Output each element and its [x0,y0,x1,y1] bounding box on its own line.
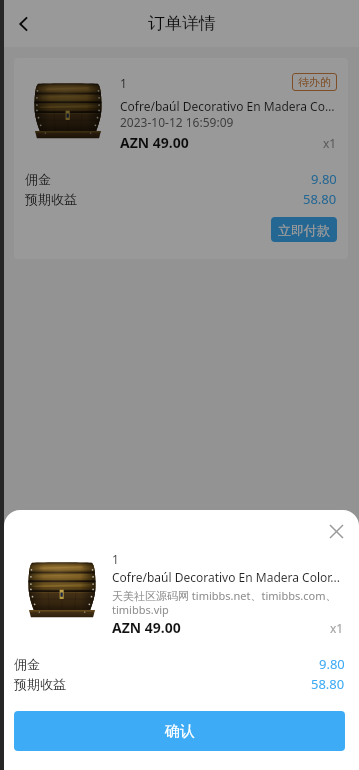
staticText: x1 [323,135,337,151]
staticText: 天美社区源码网 timibbs.net、timibbs.com、timibbs.… [112,588,344,617]
staticText: 预期收益 [25,191,77,207]
staticText: 58.80 [311,675,345,693]
button[interactable]: Close [321,516,351,546]
staticText: 1 [120,75,127,91]
staticText: Cofre/baúl Decorativo En Madera Color... [112,569,340,585]
staticText: 58.80 [303,190,337,208]
staticText: 佣金 [25,171,51,187]
staticText: 预期收益 [14,676,66,692]
staticText: 9.80 [311,170,337,188]
staticText: 佣金 [14,656,40,672]
staticText: AZN 49.00 [120,133,189,152]
staticText: 2023-10-12 16:59:09 [120,114,234,130]
staticText: 1 [112,551,119,567]
staticText: AZN 49.00 [112,618,181,637]
button[interactable]: 确认 [14,711,345,751]
staticText: 确认 [165,722,195,741]
staticText: 9.80 [319,655,345,673]
button[interactable]: 立即付款 [271,217,337,242]
button[interactable]: Back [4,4,44,44]
staticText: Cofre/baúl Decorativo En Madera Colo... [120,98,337,114]
staticText: x1 [330,620,344,636]
staticText: 待办的 [298,75,331,89]
staticText: 立即付款 [278,222,330,238]
staticText: 订单详情 [148,13,216,34]
